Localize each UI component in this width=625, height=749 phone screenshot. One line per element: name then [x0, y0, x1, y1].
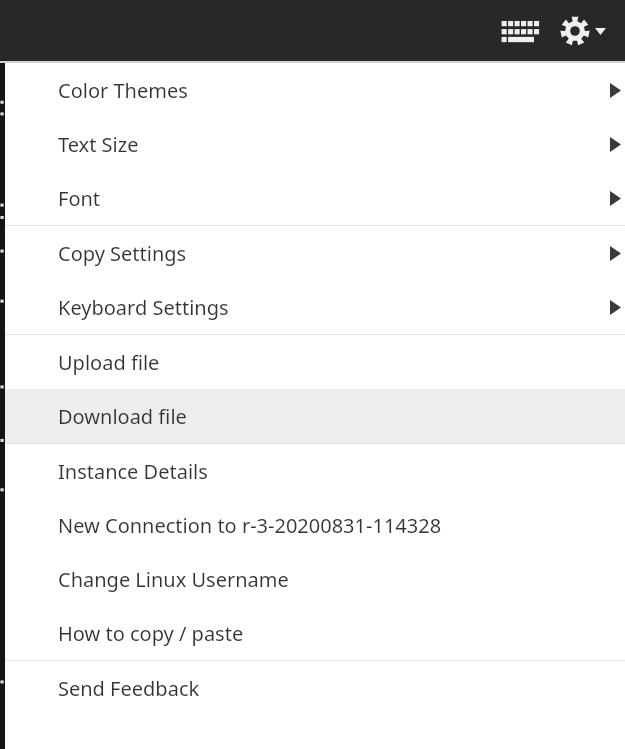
- button[interactable]: Color Themes: [5, 63, 625, 117]
- staticText: New Connection to r-3-20200831-114328: [58, 512, 442, 539]
- button[interactable]: Text Size: [5, 117, 625, 171]
- button[interactable]: Keyboard: [495, 6, 547, 56]
- button[interactable]: Copy Settings: [5, 226, 625, 280]
- staticText: How to copy / paste: [58, 620, 244, 647]
- button[interactable]: Settings: [557, 6, 609, 56]
- button[interactable]: Send Feedback: [5, 661, 625, 715]
- staticText: Download file: [58, 403, 187, 430]
- button[interactable]: Instance Details: [5, 444, 625, 498]
- button[interactable]: Download file: [5, 389, 625, 443]
- staticText: Color Themes: [58, 77, 188, 104]
- staticText: Change Linux Username: [58, 566, 289, 593]
- button[interactable]: New Connection to r-3-20200831-114328: [5, 498, 625, 552]
- staticText: Send Feedback: [58, 675, 200, 702]
- staticText: Upload file: [58, 349, 160, 376]
- button[interactable]: How to copy / paste: [5, 606, 625, 660]
- staticText: Keyboard Settings: [58, 294, 229, 321]
- button[interactable]: Upload file: [5, 335, 625, 389]
- staticText: Font: [58, 185, 101, 212]
- button[interactable]: Change Linux Username: [5, 552, 625, 606]
- staticText: Copy Settings: [58, 240, 187, 267]
- button[interactable]: Keyboard Settings: [5, 280, 625, 334]
- button[interactable]: Font: [5, 171, 625, 225]
- staticText: Instance Details: [58, 458, 208, 485]
- staticText: Text Size: [58, 131, 139, 158]
